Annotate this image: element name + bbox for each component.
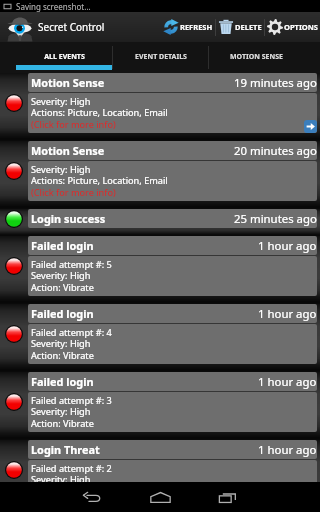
button[interactable]: Motion Sense: [0, 73, 320, 141]
staticText: Motion Sense: [31, 75, 105, 90]
staticText: 1 hour ago: [258, 442, 317, 458]
button[interactable]: Failed login: [0, 372, 320, 440]
button[interactable]: OPTIONS: [265, 12, 320, 42]
staticText: Failed login: [31, 306, 94, 321]
staticText: MOTION SENSE: [230, 52, 283, 62]
button[interactable]: Recents: [204, 482, 252, 512]
staticText: Failed attempt #: 5 Severity: High Actio…: [31, 258, 112, 294]
staticText: DELETE: [235, 22, 262, 32]
staticText: Severity: High Actions: Picture, Locatio…: [31, 95, 168, 131]
staticText: 1 hour ago: [258, 306, 317, 322]
staticText: ALL EVENTS: [44, 52, 85, 62]
staticText: 25 minutes ago: [234, 211, 317, 227]
button[interactable]: EVENT DETAILS: [113, 42, 208, 73]
button[interactable]: Home: [136, 482, 184, 512]
button[interactable]: ALL EVENTS: [16, 42, 112, 73]
staticText: Failed attempt #: 2 Severity: High Actio…: [31, 462, 112, 498]
button[interactable]: Login success: [0, 209, 320, 236]
staticText: Severity: High Actions: Picture, Locatio…: [31, 163, 168, 199]
staticText: Failed attempt #: 3 Severity: High Actio…: [31, 394, 112, 430]
button[interactable]: MOTION SENSE: [209, 42, 304, 73]
button[interactable]: Back: [68, 482, 116, 512]
staticText: Saving screenshot...: [16, 1, 91, 12]
staticText: 19 minutes ago: [234, 75, 317, 91]
button[interactable]: Failed login: [0, 304, 320, 372]
staticText: Login Threat: [31, 442, 100, 457]
staticText: 1 hour ago: [258, 374, 317, 390]
button[interactable]: Login Threat: [0, 440, 320, 508]
button[interactable]: More info: [304, 120, 317, 133]
staticText: Failed login: [31, 374, 94, 389]
button[interactable]: Motion Sense: [0, 141, 320, 209]
staticText: Failed attempt #: 4 Severity: High Actio…: [31, 326, 112, 362]
staticText: 1 hour ago: [258, 238, 317, 254]
staticText: REFRESH: [180, 22, 213, 32]
staticText: Secret Control: [38, 20, 105, 34]
button[interactable]: REFRESH: [161, 12, 215, 42]
staticText: Failed login: [31, 238, 94, 253]
button[interactable]: DELETE: [216, 12, 264, 42]
staticText: Login success: [31, 211, 106, 226]
staticText: OPTIONS: [284, 22, 318, 32]
button[interactable]: Failed login: [0, 236, 320, 304]
staticText: Motion Sense: [31, 143, 105, 158]
staticText: 20 minutes ago: [234, 143, 317, 159]
staticText: EVENT DETAILS: [135, 52, 187, 62]
